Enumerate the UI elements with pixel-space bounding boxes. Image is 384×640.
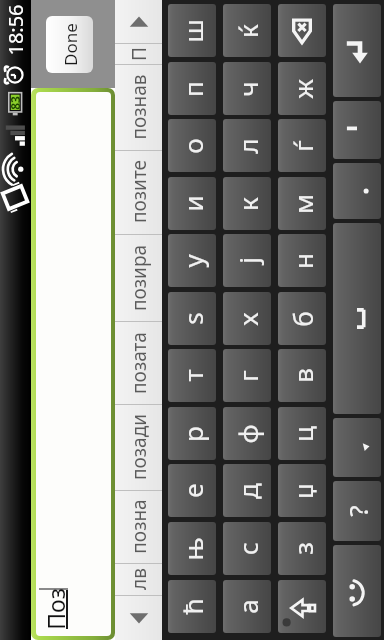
- button[interactable]: ж: [278, 62, 326, 115]
- button[interactable]: д: [223, 464, 271, 517]
- button[interactable]: позна: [115, 490, 162, 563]
- other: Shift: [278, 580, 326, 633]
- staticText: д: [230, 483, 265, 499]
- button[interactable]: позата: [115, 321, 162, 404]
- button[interactable]: а: [223, 580, 271, 633]
- staticText: м: [285, 194, 320, 214]
- button[interactable]: ч: [223, 62, 271, 115]
- staticText: с: [230, 542, 265, 555]
- staticText: о: [175, 138, 210, 154]
- button[interactable]: е: [168, 464, 216, 517]
- staticText: Поз: [40, 588, 71, 630]
- button[interactable]: лв: [115, 563, 162, 595]
- staticText: позите: [126, 160, 152, 223]
- button[interactable]: п: [168, 62, 216, 115]
- staticText: позира: [126, 245, 152, 311]
- staticText: 18:56: [2, 4, 29, 56]
- button[interactable]: [36, 92, 111, 636]
- staticText: П: [126, 47, 152, 61]
- staticText: ц: [285, 426, 320, 442]
- button[interactable]: в: [278, 349, 326, 402]
- staticText: ?: [340, 505, 375, 517]
- button[interactable]: Backspace: [278, 4, 326, 57]
- button[interactable]: ф: [223, 407, 271, 460]
- staticText: х: [230, 312, 265, 326]
- staticText: л: [230, 138, 265, 154]
- staticText: ш: [175, 19, 210, 43]
- button[interactable]: позира: [115, 234, 162, 321]
- button[interactable]: у: [168, 234, 216, 287]
- staticText: ј: [230, 257, 265, 264]
- button[interactable]: ќ: [223, 4, 271, 57]
- button[interactable]: њ: [168, 522, 216, 575]
- button[interactable]: о: [168, 119, 216, 172]
- button[interactable]: к: [223, 177, 271, 230]
- button[interactable]: познав: [115, 64, 162, 150]
- staticText: лв: [126, 568, 152, 590]
- button[interactable]: л: [223, 119, 271, 172]
- button[interactable]: н: [278, 234, 326, 287]
- button[interactable]: с: [223, 522, 271, 575]
- button[interactable]: П: [115, 43, 162, 64]
- button[interactable]: џ: [278, 464, 326, 517]
- button[interactable]: ѕ: [168, 292, 216, 345]
- staticText: а: [230, 599, 265, 614]
- staticText: е: [175, 483, 210, 498]
- button[interactable]: Shift: [278, 580, 326, 633]
- button[interactable]: Space: [333, 223, 381, 414]
- button[interactable]: Hyphen: [333, 101, 381, 159]
- button[interactable]: Done: [46, 16, 93, 73]
- other: Scroll up: [128, 11, 150, 33]
- staticText: ћ: [175, 598, 210, 615]
- staticText: в: [285, 368, 320, 383]
- staticText: ч: [230, 81, 265, 97]
- staticText: п: [175, 81, 210, 97]
- button[interactable]: т: [168, 349, 216, 402]
- button[interactable]: б: [278, 292, 326, 345]
- button[interactable]: м: [278, 177, 326, 230]
- button[interactable]: ц: [278, 407, 326, 460]
- staticText: з: [285, 542, 320, 555]
- staticText: ѕ: [175, 312, 210, 325]
- button[interactable]: позите: [115, 150, 162, 234]
- other: Backspace: [289, 18, 315, 44]
- staticText: у: [175, 254, 210, 268]
- button[interactable]: Enter: [333, 4, 381, 97]
- other: Comma: [333, 418, 381, 477]
- button[interactable]: х: [223, 292, 271, 345]
- staticText: г: [230, 370, 265, 382]
- staticText: т: [175, 369, 210, 382]
- other: Hyphen: [333, 101, 381, 159]
- staticText: ф: [230, 424, 265, 444]
- button[interactable]: Comma: [333, 418, 381, 477]
- staticText: позади: [126, 414, 152, 480]
- button[interactable]: г: [223, 349, 271, 402]
- other: Space: [333, 223, 381, 414]
- button[interactable]: з: [278, 522, 326, 575]
- button[interactable]: ?: [333, 481, 381, 541]
- staticText: позата: [126, 332, 152, 394]
- staticText: и: [175, 195, 210, 212]
- staticText: р: [175, 426, 210, 442]
- button[interactable]: р: [168, 407, 216, 460]
- staticText: Done: [59, 23, 82, 66]
- button[interactable]: ћ: [168, 580, 216, 633]
- other: Scroll down: [128, 607, 150, 629]
- staticText: њ: [175, 537, 210, 561]
- button[interactable]: Scroll up: [115, 0, 162, 43]
- staticText: ж: [285, 79, 320, 99]
- staticText: б: [285, 311, 320, 327]
- button[interactable]: ѓ: [278, 119, 326, 172]
- button[interactable]: Scroll down: [115, 595, 162, 640]
- button[interactable]: Smiley: [333, 545, 381, 637]
- button[interactable]: Period: [333, 163, 381, 219]
- staticText: к: [230, 197, 265, 211]
- staticText: 83: [7, 96, 23, 110]
- button[interactable]: позади: [115, 404, 162, 490]
- button[interactable]: и: [168, 177, 216, 230]
- other: Smiley: [333, 545, 381, 637]
- button[interactable]: ш: [168, 4, 216, 57]
- staticText: ѓ: [285, 140, 320, 152]
- button[interactable]: ј: [223, 234, 271, 287]
- staticText: позна: [126, 499, 152, 554]
